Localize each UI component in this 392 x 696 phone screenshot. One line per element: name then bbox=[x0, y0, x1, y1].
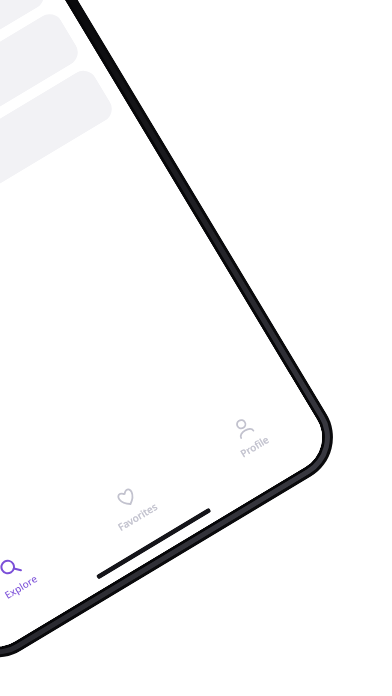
button[interactable]: Profile bbox=[179, 384, 316, 488]
button[interactable]: Downloaded bbox=[0, 9, 83, 253]
button[interactable]: Albums bbox=[0, 0, 15, 140]
staticText: Explore bbox=[2, 571, 40, 602]
staticText: Favorites bbox=[115, 499, 160, 534]
button[interactable]: Favorites bbox=[63, 454, 199, 558]
button[interactable]: Recently Play bbox=[0, 0, 49, 196]
staticText: Profile bbox=[238, 432, 271, 460]
button[interactable]: Podcasts bbox=[0, 66, 117, 309]
button[interactable]: Explore bbox=[0, 524, 83, 628]
